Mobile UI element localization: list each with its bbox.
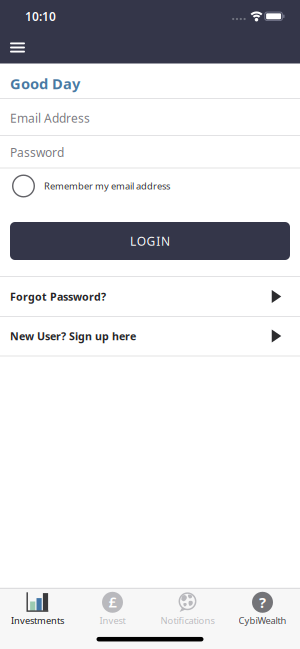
button[interactable]: Email Address: [0, 100, 300, 136]
staticText: CybiWealth: [238, 614, 286, 627]
staticText: Password: [10, 144, 64, 160]
button[interactable]: Password: [0, 136, 300, 168]
staticText: New User? Sign up here: [10, 329, 136, 343]
staticText: Invest: [99, 614, 125, 627]
staticText: 10:10: [25, 8, 56, 24]
staticText: ?: [259, 593, 266, 612]
staticText: Forgot Password?: [10, 289, 106, 304]
staticText: Good Day: [10, 74, 80, 93]
button[interactable]: Remember my email address: [0, 168, 300, 204]
staticText: LOGIN: [130, 233, 170, 249]
button[interactable]: ?: [225, 592, 300, 637]
button[interactable]: [0, 32, 34, 62]
button[interactable]: Investments: [0, 592, 75, 637]
button[interactable]: Notifications: [150, 592, 225, 637]
staticText: Notifications: [160, 614, 214, 627]
button[interactable]: New User? Sign up here: [0, 316, 300, 355]
staticText: £: [108, 592, 116, 612]
staticText: Email Address: [10, 110, 90, 126]
button[interactable]: £: [75, 592, 150, 637]
button[interactable]: LOGIN: [10, 222, 290, 260]
staticText: Remember my email address: [44, 180, 170, 192]
button[interactable]: Forgot Password?: [0, 276, 300, 316]
staticText: Investments: [11, 614, 64, 627]
